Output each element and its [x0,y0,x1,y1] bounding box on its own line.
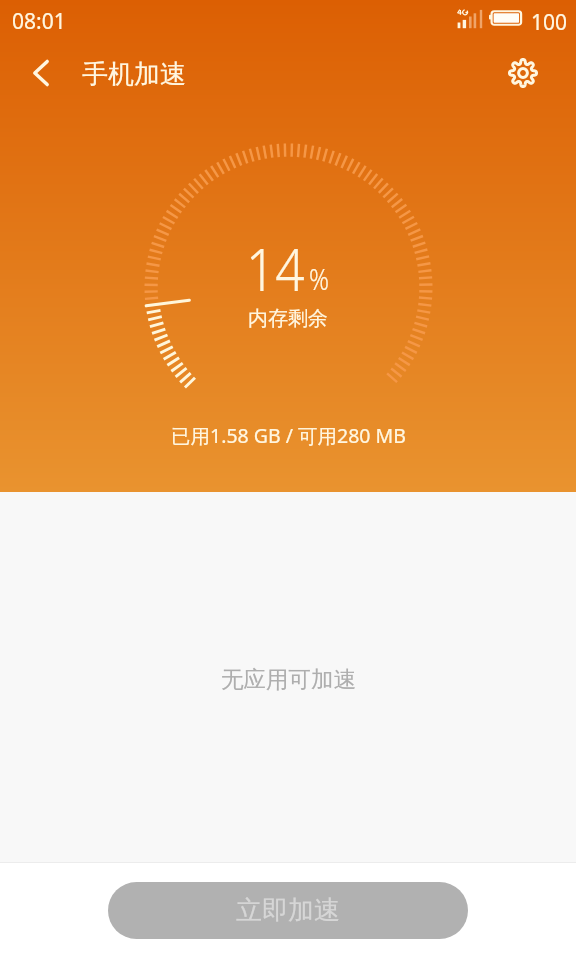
staticText: 无应用可加速 [221,665,356,693]
staticText: 08:01 [12,7,66,36]
button[interactable]: Back [11,43,71,103]
staticText: 内存剩余 [248,306,328,331]
button[interactable]: Settings [493,43,553,103]
staticText: 手机加速 [82,58,186,91]
staticText: 14 [246,228,305,308]
button[interactable]: 立即加速 [108,882,468,939]
staticText: 100 [531,8,568,37]
staticText: 立即加速 [236,894,340,927]
staticText: 已用1.58 GB / 可用280 MB [171,422,406,449]
staticText: % [309,258,329,299]
